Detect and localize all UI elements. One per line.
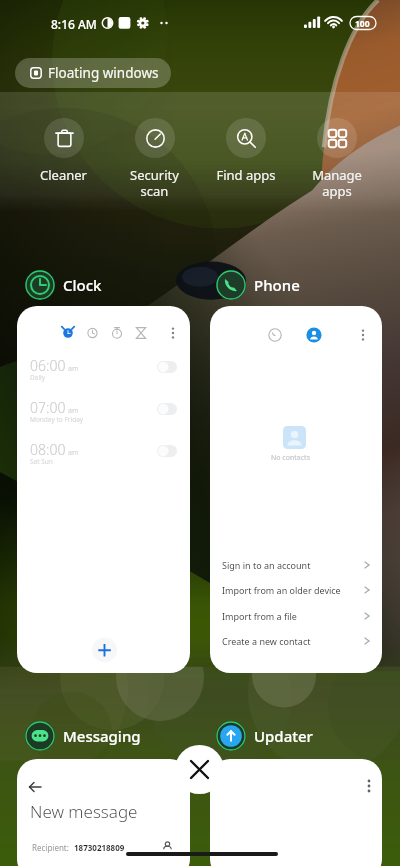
button[interactable]: Clock bbox=[25, 270, 102, 300]
button[interactable]: 06:00 bbox=[17, 352, 190, 394]
button[interactable]: Import from an older device bbox=[210, 577, 382, 602]
staticText: Phone bbox=[254, 275, 300, 295]
staticText: Daily bbox=[30, 373, 46, 382]
staticText: Sign in to an account bbox=[222, 559, 311, 571]
staticText: Cleaner bbox=[40, 166, 87, 184]
staticText: Clock bbox=[63, 275, 102, 295]
staticText: 8:16 AM bbox=[51, 16, 97, 32]
staticText: Import from a file bbox=[222, 610, 297, 622]
staticText: Manage apps bbox=[312, 166, 362, 199]
staticText: 18730218809 bbox=[74, 842, 125, 853]
staticText: Messaging bbox=[63, 726, 141, 746]
staticText: am bbox=[68, 364, 79, 374]
button[interactable]: 07:00 bbox=[17, 394, 190, 436]
button[interactable]: Phone bbox=[216, 270, 300, 300]
button[interactable]: 08:00 bbox=[17, 436, 190, 478]
button[interactable]: Find apps bbox=[200, 92, 291, 184]
button[interactable] bbox=[210, 759, 382, 866]
staticText: Recipient: bbox=[32, 842, 69, 853]
staticText: Create a new contact bbox=[222, 635, 311, 647]
button[interactable]: New message bbox=[17, 759, 190, 866]
button[interactable]: No contacts bbox=[210, 306, 382, 673]
button[interactable]: Add alarm bbox=[92, 637, 118, 663]
staticText: 06:00 bbox=[30, 356, 66, 375]
staticText: Find apps bbox=[216, 166, 276, 184]
staticText: Security scan bbox=[130, 166, 179, 199]
button[interactable]: Cleaner bbox=[18, 92, 109, 184]
staticText: New message bbox=[30, 800, 138, 823]
button[interactable]: 06:00 bbox=[17, 306, 190, 673]
staticText: 100 bbox=[355, 18, 370, 30]
staticText: am bbox=[68, 448, 79, 458]
button[interactable]: Updater bbox=[216, 721, 313, 751]
button[interactable]: Create a new contact bbox=[210, 628, 382, 653]
button[interactable]: Floating windows bbox=[15, 58, 171, 88]
staticText: Floating windows bbox=[48, 64, 159, 82]
staticText: Sat Sun bbox=[30, 457, 53, 466]
button[interactable]: Close all bbox=[175, 745, 224, 794]
button[interactable]: Messaging bbox=[25, 721, 141, 751]
button[interactable]: Manage apps bbox=[291, 92, 382, 199]
button[interactable]: Security scan bbox=[109, 92, 200, 199]
staticText: Import from an older device bbox=[222, 584, 341, 596]
staticText: Monday to Friday bbox=[30, 415, 84, 424]
button[interactable]: Import from a file bbox=[210, 603, 382, 628]
staticText: am bbox=[68, 406, 79, 416]
staticText: No contacts bbox=[271, 453, 310, 463]
staticText: 07:00 bbox=[30, 398, 66, 417]
button[interactable]: Sign in to an account bbox=[210, 552, 382, 577]
staticText: 08:00 bbox=[30, 440, 66, 459]
staticText: Updater bbox=[254, 726, 313, 746]
